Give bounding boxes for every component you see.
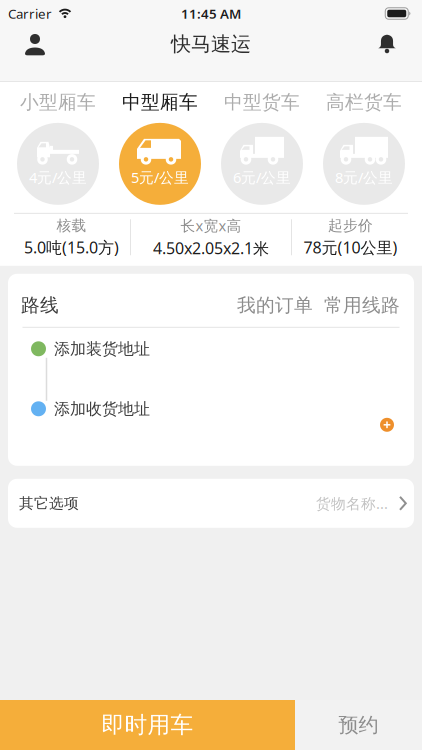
staticText: 高栏货车: [326, 91, 402, 114]
button[interactable]: 即时用车: [0, 700, 295, 750]
staticText: 中型货车: [224, 91, 300, 114]
button[interactable]: 我的订单: [237, 294, 313, 317]
button[interactable]: 预约: [295, 700, 422, 750]
staticText: 6元/公里: [233, 168, 291, 187]
staticText: 78元(10公里): [303, 237, 397, 258]
staticText: 核载: [56, 217, 86, 235]
staticText: 11:45 AM: [181, 5, 241, 22]
staticText: 4.50x2.05x2.1米: [153, 237, 269, 259]
button[interactable]: 高栏货车: [323, 91, 405, 205]
staticText: 即时用车: [101, 711, 193, 739]
staticText: 起步价: [328, 217, 373, 235]
button[interactable]: 添加装货地址: [8, 332, 414, 366]
staticText: 路线: [21, 294, 59, 317]
button[interactable]: 添加收货地址: [8, 392, 414, 426]
staticText: 5.0吨(15.0方): [24, 237, 119, 258]
staticText: 常用线路: [324, 294, 400, 317]
staticText: 长x宽x高: [180, 216, 241, 235]
staticText: 添加收货地址: [54, 399, 150, 419]
button[interactable]: 常用线路: [324, 294, 400, 317]
staticText: Carrier: [8, 5, 52, 22]
staticText: 中型厢车: [122, 91, 198, 114]
button[interactable]: 消息: [365, 27, 409, 61]
staticText: 8元/公里: [335, 168, 393, 187]
button[interactable]: 添加地址: [373, 411, 401, 439]
staticText: 5元/公里: [131, 168, 189, 187]
staticText: 4元/公里: [29, 168, 87, 187]
button[interactable]: 其它选项: [8, 479, 414, 528]
staticText: 预约: [338, 713, 378, 737]
staticText: 我的订单: [237, 294, 313, 317]
staticText: 其它选项: [19, 494, 79, 512]
staticText: 货物名称...: [316, 494, 388, 513]
button[interactable]: 我的: [13, 27, 57, 61]
button[interactable]: 小型厢车: [17, 91, 99, 205]
staticText: 快马速运: [171, 32, 251, 56]
button[interactable]: 中型厢车: [119, 91, 201, 205]
staticText: 添加装货地址: [54, 339, 150, 359]
staticText: 小型厢车: [20, 91, 96, 114]
button[interactable]: 中型货车: [221, 91, 303, 205]
